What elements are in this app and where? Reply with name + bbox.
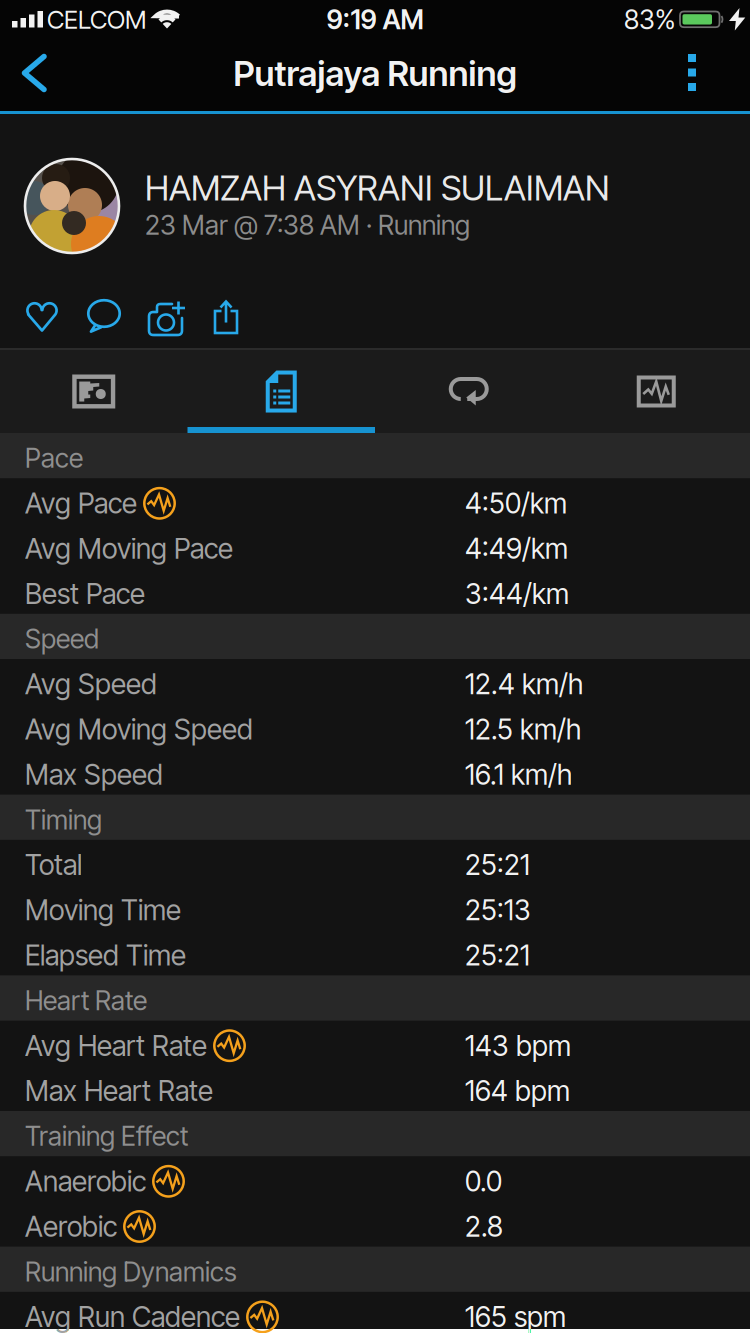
staticText: 12.4 km/h bbox=[465, 668, 583, 701]
staticText: Speed bbox=[25, 623, 99, 655]
button[interactable]: Stats bbox=[187, 353, 375, 430]
staticText: 143 bpm bbox=[465, 1029, 571, 1062]
staticText: Pace bbox=[25, 442, 83, 474]
staticText: 165 spm bbox=[465, 1300, 566, 1333]
button[interactable]: Map bbox=[0, 353, 187, 430]
staticText: CELCOM bbox=[47, 5, 146, 34]
staticText: Heart Rate bbox=[25, 985, 147, 1016]
staticText: 25:13 bbox=[465, 894, 531, 927]
staticText: Aerobic bbox=[25, 1210, 117, 1243]
staticText: 23 Mar @ 7:38 AM · Running bbox=[145, 209, 470, 241]
button[interactable]: More options bbox=[662, 36, 750, 111]
staticText: 9:19 AM bbox=[326, 4, 423, 35]
staticText: 25:21 bbox=[465, 848, 530, 881]
staticText: Max Heart Rate bbox=[25, 1074, 213, 1107]
staticText: Avg Speed bbox=[25, 668, 157, 701]
staticText: Best Pace bbox=[25, 577, 145, 610]
staticText: Elapsed Time bbox=[25, 939, 186, 972]
staticText: 12.5 km/h bbox=[465, 713, 581, 746]
staticText: Avg Moving Pace bbox=[25, 532, 233, 565]
staticText: Putrajaya Running bbox=[233, 53, 516, 94]
staticText: Training Effect bbox=[25, 1120, 188, 1152]
staticText: Moving Time bbox=[25, 894, 181, 927]
staticText: 4:50/km bbox=[465, 487, 567, 520]
staticText: Avg Moving Speed bbox=[25, 713, 253, 746]
staticText: Avg Run Cadence bbox=[25, 1300, 240, 1333]
button[interactable]: Charts bbox=[562, 353, 750, 430]
button[interactable]: Comment bbox=[58, 299, 121, 335]
staticText: 4:49/km bbox=[465, 532, 568, 565]
staticText: Anaerobic bbox=[25, 1165, 146, 1198]
staticText: 25:21 bbox=[465, 939, 530, 972]
staticText: 2.8 bbox=[465, 1210, 503, 1243]
staticText: 16.1 km/h bbox=[465, 758, 572, 791]
button[interactable]: Like bbox=[26, 301, 58, 332]
staticText: Max Speed bbox=[25, 758, 163, 791]
button[interactable]: Share bbox=[188, 298, 240, 336]
staticText: 164 bpm bbox=[465, 1074, 570, 1107]
staticText: Total bbox=[25, 848, 82, 881]
staticText: Running Dynamics bbox=[25, 1256, 237, 1287]
staticText: Timing bbox=[25, 804, 102, 835]
staticText: 83% bbox=[624, 4, 675, 35]
staticText: 0.0 bbox=[465, 1165, 502, 1198]
staticText: HAMZAH ASYRANI SULAIMAN bbox=[145, 167, 610, 208]
button[interactable]: Laps bbox=[375, 353, 562, 430]
staticText: Avg Pace bbox=[25, 487, 137, 520]
staticText: Avg Heart Rate bbox=[25, 1029, 207, 1062]
button[interactable]: Add photo bbox=[121, 297, 188, 337]
staticText: 3:44/km bbox=[465, 577, 569, 610]
button[interactable]: Back bbox=[0, 36, 67, 111]
